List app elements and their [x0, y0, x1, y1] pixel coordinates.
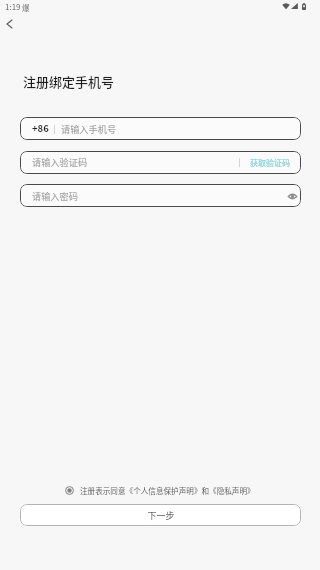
button[interactable]: +86 [20, 117, 301, 140]
button[interactable]: 请输入密码 [20, 184, 301, 207]
staticText: 注册表示同意《个人信息保护声明》和《隐私声明》 [80, 485, 255, 496]
staticText: 下一步 [147, 509, 175, 522]
staticText: 请输入验证码 [32, 155, 88, 168]
staticText: 注册绑定手机号 [23, 72, 115, 91]
button[interactable]: 注册表示同意《个人信息保护声明》和《隐私声明》 [0, 483, 320, 497]
staticText: 爆 [22, 2, 30, 13]
button[interactable]: 获取验证码 [240, 151, 300, 174]
button[interactable]: Back [0, 14, 19, 33]
staticText: +86 [32, 121, 49, 135]
button[interactable]: 下一步 [20, 504, 301, 526]
staticText: 请输入密码 [32, 189, 78, 202]
button[interactable]: Show password [283, 187, 301, 205]
staticText: 请输入手机号 [61, 122, 117, 135]
button[interactable]: 请输入验证码 [20, 151, 301, 174]
staticText: 1:19 [5, 1, 21, 13]
staticText: 获取验证码 [250, 157, 290, 169]
